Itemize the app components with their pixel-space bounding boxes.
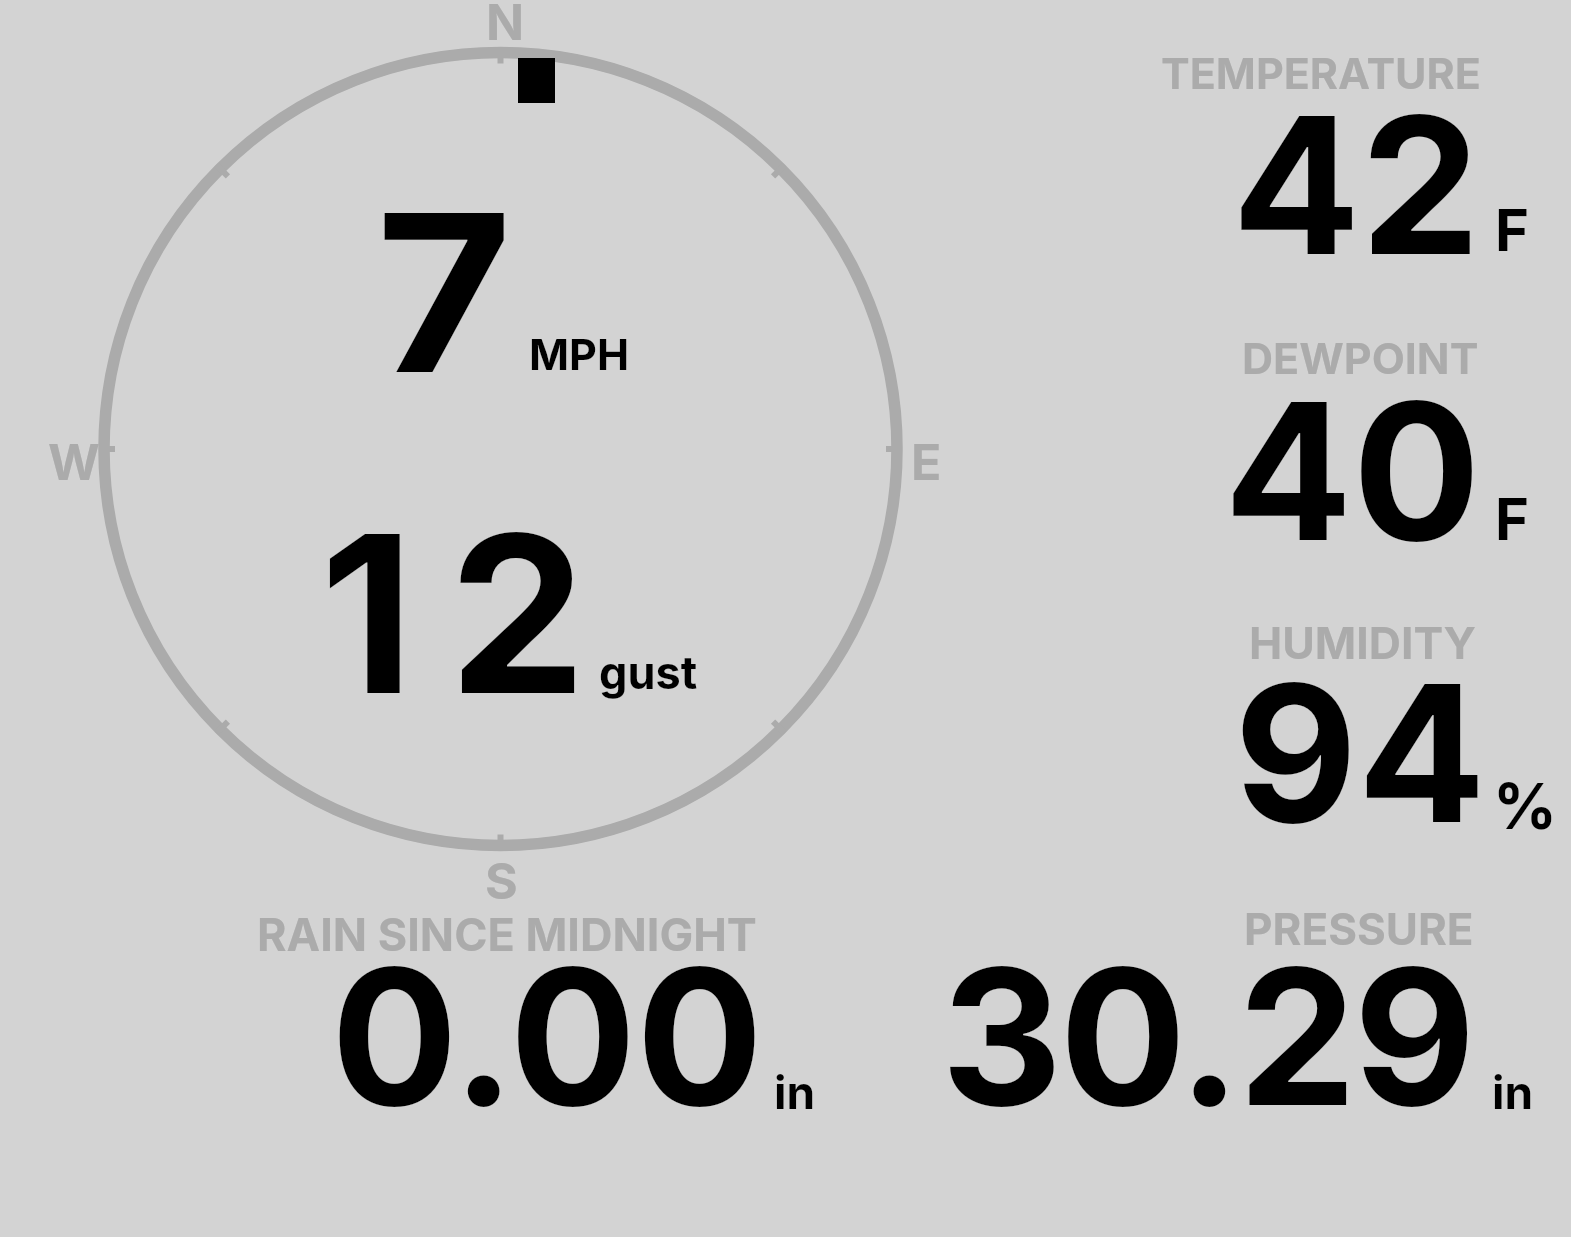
staticText: RAIN SINCE MIDNIGHT xyxy=(257,907,757,961)
staticText: S xyxy=(485,851,518,911)
button[interactable]: RAIN SINCE MIDNIGHT xyxy=(230,900,830,1120)
staticText: 7 xyxy=(376,161,512,425)
button[interactable]: TEMPERATURE xyxy=(1140,40,1571,270)
staticText: HUMIDITY xyxy=(1249,616,1477,670)
button[interactable]: Wind direction compass xyxy=(96,45,905,854)
button[interactable]: Wind gust 12 xyxy=(320,505,710,715)
staticText: 12 xyxy=(320,482,621,746)
button[interactable]: DEWPOINT xyxy=(1140,325,1571,555)
staticText: E xyxy=(911,432,942,492)
staticText: F xyxy=(1495,484,1530,554)
staticText: 0.00 xyxy=(331,923,764,1143)
staticText: 94 xyxy=(1234,638,1486,868)
staticText: N xyxy=(486,0,525,52)
staticText: 40 xyxy=(1224,356,1481,586)
staticText: F xyxy=(1495,195,1530,265)
staticText: gust xyxy=(599,645,698,699)
staticText: W xyxy=(48,432,100,492)
staticText: TEMPERATURE xyxy=(1161,47,1481,99)
button[interactable]: HUMIDITY xyxy=(1140,609,1571,839)
staticText: 42 xyxy=(1232,70,1481,300)
button[interactable]: Wind speed 7 miles per hour xyxy=(330,185,660,395)
staticText: in xyxy=(774,1064,816,1120)
staticText: MPH xyxy=(529,328,630,380)
staticText: % xyxy=(1493,768,1557,844)
button[interactable]: PRESSURE xyxy=(920,900,1560,1120)
staticText: DEWPOINT xyxy=(1242,332,1479,384)
staticText: in xyxy=(1492,1064,1534,1120)
staticText: PRESSURE xyxy=(1244,902,1474,955)
staticText: 30.29 xyxy=(941,923,1473,1143)
